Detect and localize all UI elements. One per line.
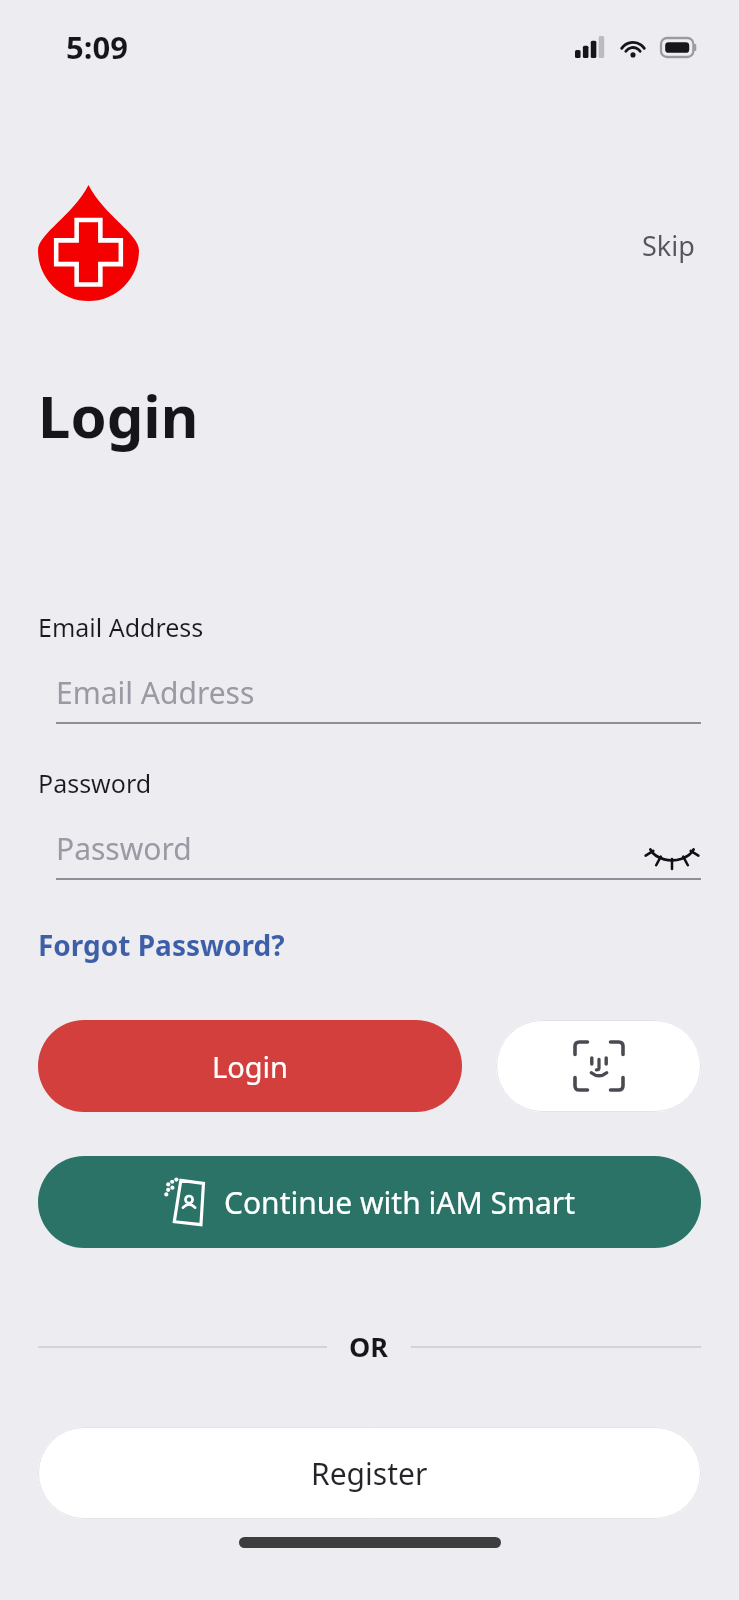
- button[interactable]: Continue with iAM Smart: [38, 1156, 701, 1248]
- button[interactable]: Email Address: [56, 662, 701, 722]
- staticText: Login: [38, 376, 199, 455]
- staticText: Password: [56, 828, 643, 869]
- staticText: Continue with iAM Smart: [224, 1182, 575, 1223]
- button[interactable]: Face ID login: [496, 1020, 701, 1112]
- staticText: Login: [212, 1047, 288, 1086]
- staticText: 5:09: [66, 26, 128, 68]
- staticText: Email Address: [38, 610, 204, 644]
- staticText: OR: [349, 1328, 389, 1365]
- button[interactable]: Forgot Password?: [38, 922, 285, 968]
- staticText: Forgot Password?: [38, 926, 285, 964]
- staticText: Register: [311, 1453, 428, 1494]
- button[interactable]: Register: [38, 1427, 701, 1519]
- button[interactable]: Show password: [643, 819, 701, 877]
- staticText: Email Address: [56, 672, 701, 713]
- staticText: Skip: [642, 227, 695, 264]
- staticText: Password: [38, 766, 152, 800]
- button[interactable]: Login: [38, 1020, 462, 1112]
- button[interactable]: Password: [56, 818, 701, 878]
- button[interactable]: Skip: [636, 223, 701, 268]
